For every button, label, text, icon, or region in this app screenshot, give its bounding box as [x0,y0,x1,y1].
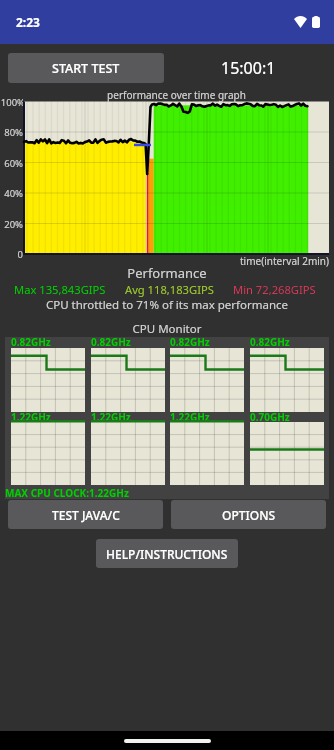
staticText: Avg 118,183GIPS [125,282,214,297]
staticText: time(interval 2min) [0,254,329,268]
staticText: performance over time graph [24,88,329,102]
staticText: 1.22GHz [91,410,131,424]
staticText: HELP/INSTRUCTIONS [106,546,228,562]
staticText: 0.70GHz [250,410,290,424]
staticText: 60% [0,157,23,170]
button[interactable]: HELP/INSTRUCTIONS [96,539,238,568]
staticText: CPU throttled to 71% of its max performa… [0,297,334,313]
staticText: Performance [0,264,334,282]
staticText: 0.82GHz [91,335,131,349]
staticText: 100% [0,96,23,109]
button[interactable]: TEST JAVA/C [8,500,163,529]
staticText: 1.22GHz [170,410,210,424]
staticText: START TEST [52,60,120,77]
button[interactable]: START TEST [8,53,164,83]
button[interactable]: OPTIONS [171,500,326,529]
staticText: TEST JAVA/C [52,507,120,523]
staticText: 20% [0,218,23,231]
staticText: 80% [0,126,23,139]
staticText: Max 135,843GIPS [14,282,106,297]
staticText: 0.82GHz [11,335,51,349]
staticText: 0.82GHz [250,335,290,349]
staticText: CPU Monitor [0,321,334,337]
staticText: 15:00:1 [221,57,276,79]
staticText: Min 72,268GIPS [233,282,316,297]
staticText: 1.22GHz [11,410,51,424]
staticText: 40% [0,187,23,200]
staticText: 2:23 [16,14,40,30]
staticText: MAX CPU CLOCK:1.22GHz [5,486,129,500]
staticText: OPTIONS [222,507,276,523]
staticText: 0.82GHz [170,335,210,349]
staticText: 0 [0,248,23,261]
